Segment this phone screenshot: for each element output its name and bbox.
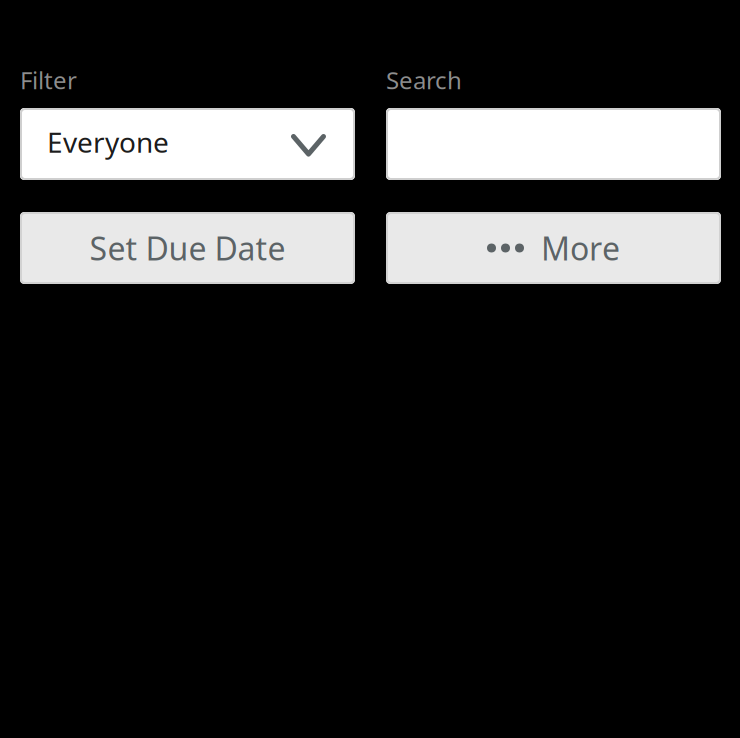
staticText: Everyone [47, 123, 169, 161]
staticText: Search [386, 64, 462, 96]
staticText: Filter [20, 64, 77, 96]
staticText: More [541, 227, 620, 269]
button[interactable]: Everyone [20, 108, 355, 180]
staticText: Set Due Date [89, 227, 285, 269]
button[interactable]: Search [386, 108, 721, 180]
button[interactable]: More [386, 212, 721, 284]
button[interactable]: Set Due Date [20, 212, 355, 284]
